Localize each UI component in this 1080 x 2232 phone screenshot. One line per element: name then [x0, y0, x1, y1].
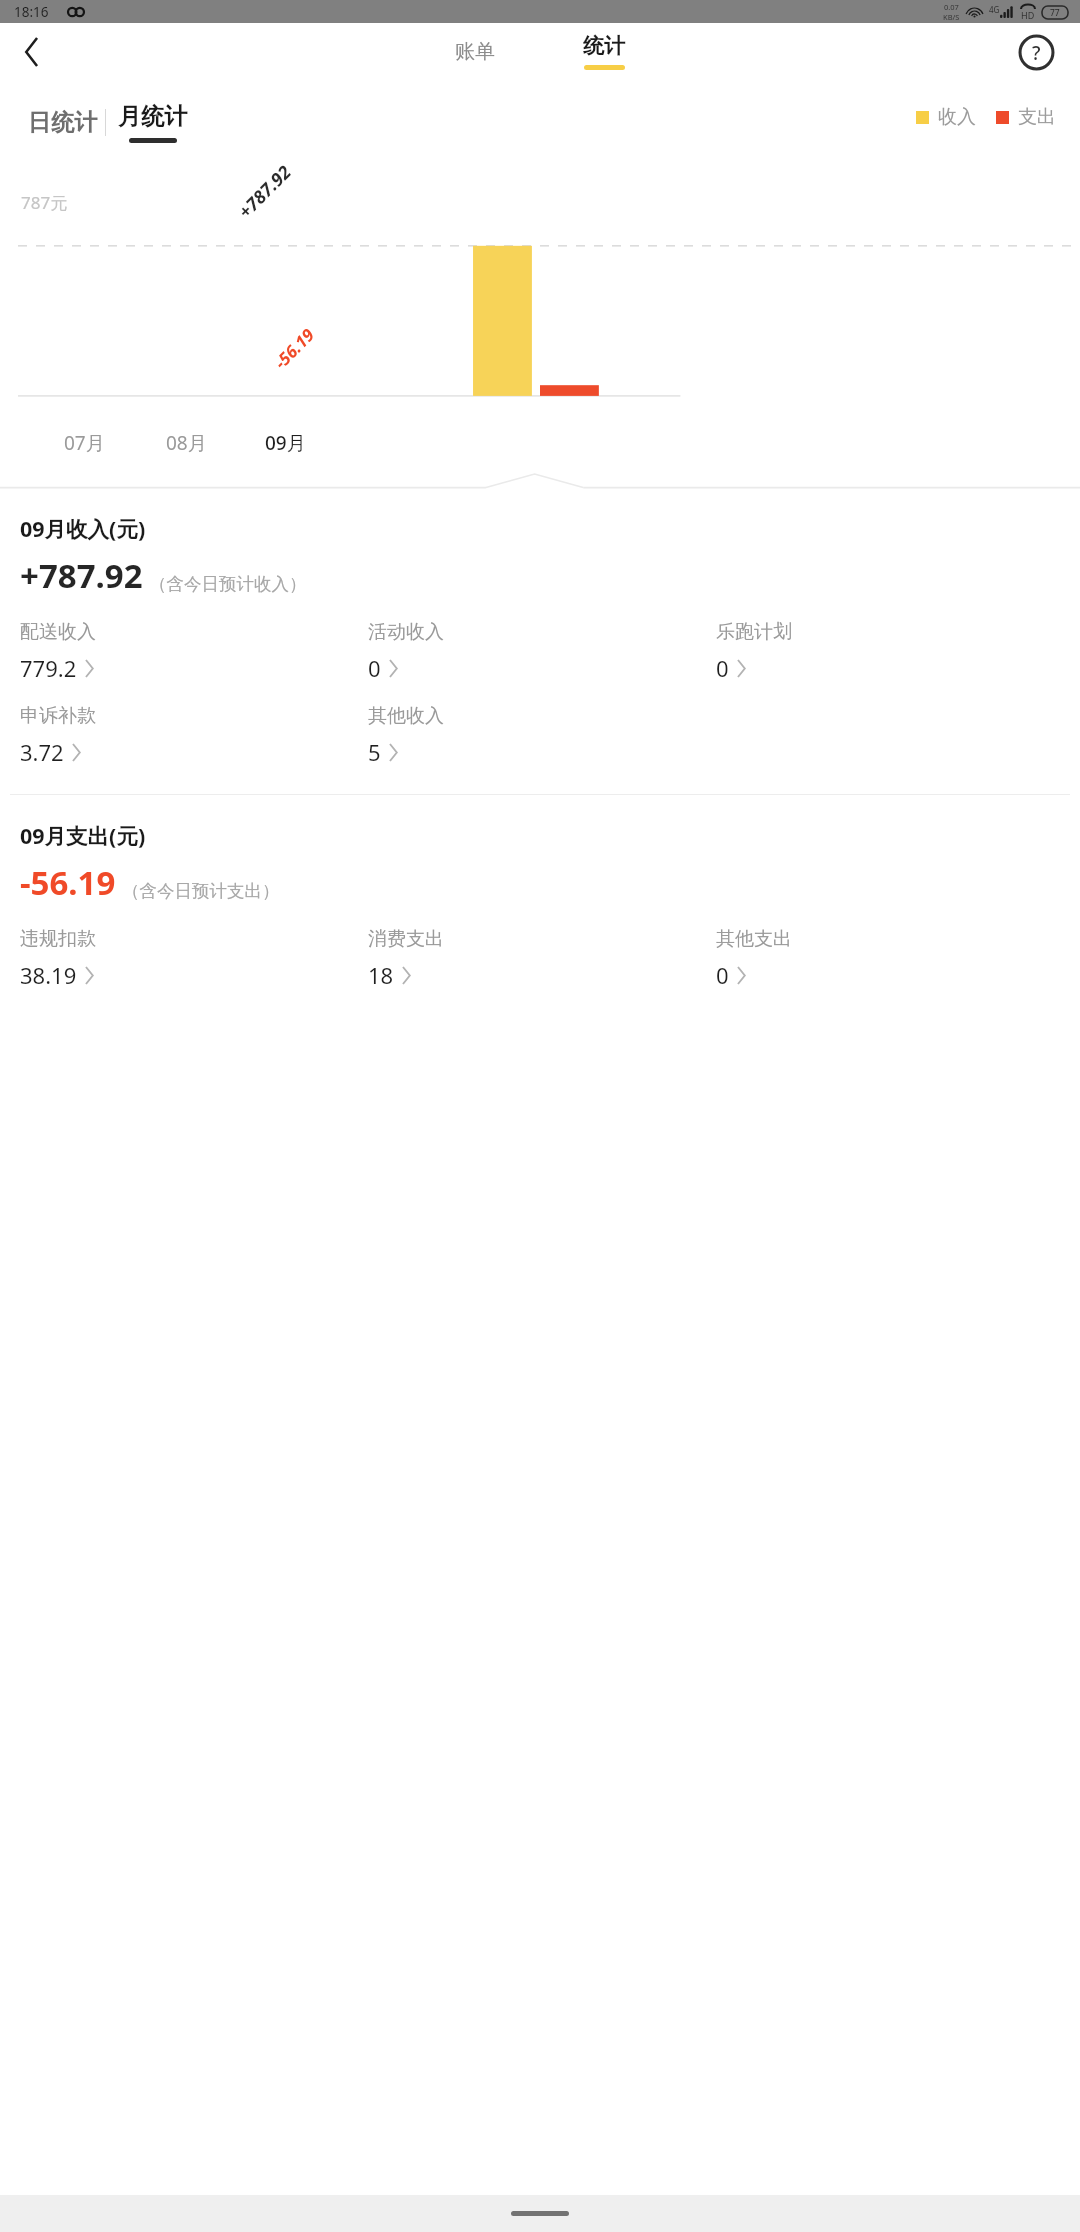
staticText: （含今日预计收入）	[149, 573, 307, 595]
staticText: 18:16	[14, 3, 49, 21]
button[interactable]: 其他收入	[368, 704, 716, 767]
staticText: +787.92	[20, 553, 143, 598]
staticText: 收入	[938, 105, 976, 129]
staticText: 09月收入(元)	[20, 514, 146, 543]
staticText: 其他收入	[368, 704, 444, 728]
button[interactable]: 08月	[166, 430, 207, 456]
button[interactable]: 07月	[64, 430, 105, 456]
staticText: 乐跑计划	[716, 620, 792, 644]
button[interactable]: 消费支出	[368, 927, 716, 990]
staticText: KB/S	[943, 12, 960, 22]
staticText: 违规扣款	[20, 927, 96, 951]
button[interactable]: 乐跑计划	[716, 620, 1064, 683]
button[interactable]: 账单	[439, 33, 511, 70]
staticText: 其他支出	[716, 927, 792, 951]
staticText: 消费支出	[368, 927, 444, 951]
staticText: +787.92	[233, 159, 297, 224]
staticText: 支出	[1018, 105, 1056, 129]
staticText: 09月支出(元)	[20, 821, 146, 850]
button[interactable]: 活动收入	[368, 620, 716, 683]
button[interactable]: Back	[10, 30, 54, 74]
staticText: 0	[716, 960, 729, 990]
staticText: 统计	[583, 33, 625, 59]
staticText: 18	[368, 960, 394, 990]
staticText: 0	[368, 653, 381, 683]
staticText: 4G	[989, 4, 1000, 15]
staticText: HD	[1021, 9, 1035, 21]
staticText: 日统计	[28, 108, 97, 137]
staticText: -56.19	[20, 860, 116, 905]
staticText: 5	[368, 737, 381, 767]
staticText: 38.19	[20, 960, 77, 990]
staticText: 77	[1050, 7, 1060, 19]
staticText: 申诉补款	[20, 704, 96, 728]
staticText: 活动收入	[368, 620, 444, 644]
staticText: （含今日预计支出）	[122, 880, 280, 902]
button[interactable]: Help	[1014, 30, 1058, 74]
button[interactable]: 配送收入	[20, 620, 368, 683]
staticText: 0	[716, 653, 729, 683]
button[interactable]: 09月	[265, 430, 306, 456]
button[interactable]: 申诉补款	[20, 704, 368, 767]
button[interactable]: 违规扣款	[20, 927, 368, 990]
staticText: ?	[1032, 40, 1041, 66]
staticText: 配送收入	[20, 620, 96, 644]
staticText: 账单	[455, 39, 495, 64]
staticText: 3.72	[20, 737, 64, 767]
button[interactable]: 其他支出	[716, 927, 1064, 990]
staticText: 787元	[21, 191, 68, 214]
button[interactable]: 统计	[567, 31, 641, 72]
staticText: -56.19	[269, 323, 319, 374]
button[interactable]: 月统计	[106, 102, 195, 143]
staticText: 月统计	[118, 102, 187, 131]
staticText: 0.07	[944, 2, 959, 12]
staticText: 779.2	[20, 653, 77, 683]
button[interactable]: 日统计	[20, 100, 105, 145]
